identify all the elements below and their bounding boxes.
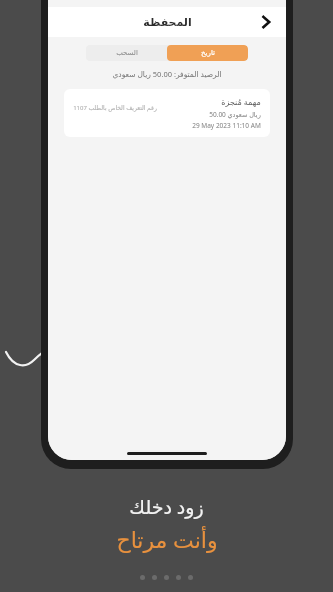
staticText: تاريخ (201, 49, 215, 57)
button[interactable]: Page 2 (152, 575, 157, 580)
staticText: المحفظة (143, 16, 192, 29)
staticText: الرصيد المتوفر: 50.00 ريال سعودي (112, 69, 222, 79)
staticText: مهمة مُنجزة (221, 96, 261, 107)
staticText: وأنت مرتاح (116, 524, 218, 554)
staticText: رقم التعريف الخاص بالطلب 1107 (73, 104, 157, 112)
button[interactable]: Back (254, 10, 278, 34)
button[interactable]: Page 1 (140, 575, 145, 580)
button[interactable]: رقم التعريف الخاص بالطلب 1107 (64, 89, 270, 137)
button[interactable]: Page 5 (188, 575, 193, 580)
button[interactable]: السحب (86, 45, 167, 61)
staticText: 29 May 2023 11:10 AM (192, 121, 261, 130)
staticText: 50.00 ريال سعودي (209, 110, 261, 119)
staticText: السحب (116, 49, 138, 57)
button[interactable]: Page 3 (164, 575, 169, 580)
button[interactable]: تاريخ (167, 45, 248, 61)
staticText: زود دخلك (129, 494, 204, 520)
button[interactable]: Page 4 (176, 575, 181, 580)
